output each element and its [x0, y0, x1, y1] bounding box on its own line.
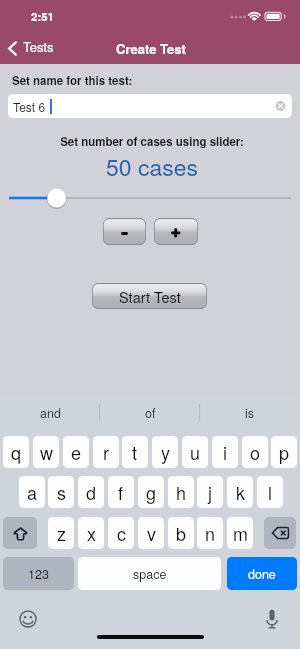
- staticText: of: [145, 404, 156, 422]
- button[interactable]: s: [48, 476, 74, 508]
- staticText: 50 cases: [2, 150, 300, 183]
- staticText: i: [223, 439, 227, 465]
- staticText: t: [132, 439, 138, 465]
- button[interactable]: Emoji keyboard: [16, 607, 39, 630]
- button[interactable]: Dictation: [260, 607, 283, 630]
- staticText: c: [117, 520, 126, 546]
- staticText: r: [103, 439, 109, 465]
- staticText: Test 6: [13, 98, 46, 115]
- staticText: g: [146, 479, 157, 505]
- staticText: j: [208, 479, 212, 505]
- button[interactable]: f: [108, 476, 134, 508]
- staticText: a: [27, 479, 38, 505]
- button[interactable]: Test 6: [8, 94, 292, 118]
- staticText: s: [57, 479, 66, 505]
- button[interactable]: g: [138, 476, 164, 508]
- button[interactable]: done: [227, 557, 297, 590]
- button[interactable]: t: [122, 436, 148, 468]
- staticText: Create Test: [116, 39, 186, 58]
- staticText: 2:51: [31, 8, 55, 24]
- staticText: Set name for this test:: [12, 72, 133, 88]
- button[interactable]: p: [271, 436, 297, 468]
- button[interactable]: m: [227, 517, 253, 549]
- button[interactable]: i: [212, 436, 238, 468]
- button[interactable]: z: [48, 517, 74, 549]
- staticText: space: [133, 565, 167, 583]
- staticText: x: [87, 520, 96, 546]
- button[interactable]: h: [168, 476, 194, 508]
- button[interactable]: n: [197, 517, 223, 549]
- staticText: u: [190, 439, 201, 465]
- button[interactable]: e: [63, 436, 89, 468]
- button[interactable]: 123: [3, 557, 74, 590]
- button[interactable]: Decrease: [103, 218, 146, 245]
- button[interactable]: is: [200, 400, 300, 425]
- staticText: n: [205, 520, 216, 546]
- button[interactable]: b: [168, 517, 194, 549]
- button[interactable]: q: [3, 436, 29, 468]
- staticText: Tests: [23, 37, 54, 56]
- button[interactable]: Backspace: [264, 517, 296, 549]
- staticText: b: [176, 520, 187, 546]
- button[interactable]: j: [197, 476, 223, 508]
- staticText: f: [118, 479, 124, 505]
- staticText: Set number of cases using slider:: [2, 133, 300, 149]
- button[interactable]: Back: [4, 37, 62, 60]
- staticText: and: [40, 404, 61, 422]
- staticText: q: [11, 439, 22, 465]
- button[interactable]: space: [78, 557, 221, 590]
- button[interactable]: d: [78, 476, 104, 508]
- button[interactable]: r: [93, 436, 119, 468]
- button[interactable]: w: [33, 436, 59, 468]
- staticText: d: [86, 479, 97, 505]
- button[interactable]: Start Test: [92, 283, 207, 309]
- staticText: z: [57, 520, 66, 546]
- staticText: k: [236, 479, 245, 505]
- button[interactable]: k: [227, 476, 253, 508]
- staticText: y: [161, 439, 170, 465]
- staticText: l: [268, 479, 272, 505]
- button[interactable]: a: [19, 476, 45, 508]
- staticText: m: [233, 520, 248, 546]
- staticText: e: [71, 439, 82, 465]
- staticText: h: [176, 479, 187, 505]
- button[interactable]: u: [182, 436, 208, 468]
- button[interactable]: and: [0, 400, 100, 425]
- staticText: v: [147, 520, 156, 546]
- staticText: 123: [28, 565, 49, 583]
- staticText: o: [250, 439, 261, 465]
- button[interactable]: of: [100, 400, 200, 425]
- button[interactable]: y: [152, 436, 178, 468]
- staticText: w: [40, 439, 53, 465]
- button[interactable]: Shift: [3, 517, 37, 549]
- button[interactable]: v: [138, 517, 164, 549]
- staticText: p: [279, 439, 290, 465]
- other: Back: [8, 41, 17, 56]
- button[interactable]: Increase: [154, 218, 198, 245]
- staticText: done: [248, 565, 276, 583]
- button[interactable]: o: [242, 436, 268, 468]
- staticText: Start Test: [119, 286, 181, 307]
- button[interactable]: l: [257, 476, 283, 508]
- button[interactable]: x: [78, 517, 104, 549]
- button[interactable]: c: [108, 517, 134, 549]
- staticText: is: [245, 404, 255, 422]
